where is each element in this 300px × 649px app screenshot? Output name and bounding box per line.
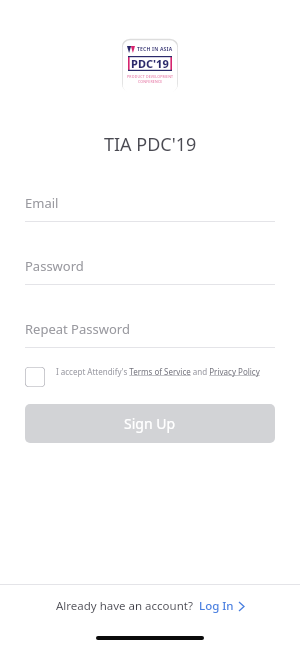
staticText: TECH IN ASIA — [137, 46, 173, 53]
button[interactable]: Password — [25, 257, 275, 285]
button[interactable]: Already have an account? — [48, 592, 252, 620]
staticText: I accept Attendify's Terms of Service an… — [56, 366, 260, 377]
staticText: TIA PDC'19 — [104, 132, 197, 157]
other: Accept terms checkbox — [25, 367, 45, 387]
button[interactable]: Email — [25, 194, 275, 222]
staticText: Already have an account? — [56, 598, 193, 614]
staticText: PDC'19 — [131, 56, 169, 71]
staticText: Sign Up — [124, 414, 176, 433]
staticText: Log In — [199, 598, 234, 614]
staticText: Password — [25, 257, 84, 275]
button[interactable]: Accept terms checkbox — [25, 366, 275, 387]
staticText: Email — [25, 194, 59, 212]
button[interactable]: Sign Up — [25, 404, 275, 443]
staticText: CONFERENCE — [138, 79, 163, 84]
staticText: Repeat Password — [25, 320, 130, 338]
button[interactable]: Repeat Password — [25, 320, 275, 348]
staticText: PRODUCT DEVELOPMENT — [127, 74, 174, 79]
